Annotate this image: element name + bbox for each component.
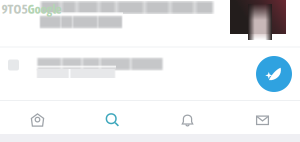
button[interactable]: Search	[75, 103, 150, 137]
button[interactable]: Messages	[225, 103, 300, 137]
button[interactable]: Notifications	[150, 103, 225, 137]
button[interactable]: Home	[0, 103, 75, 137]
staticText: Google	[27, 1, 61, 17]
button[interactable]: Compose	[256, 56, 292, 92]
staticText: 9TO5	[1, 1, 27, 17]
